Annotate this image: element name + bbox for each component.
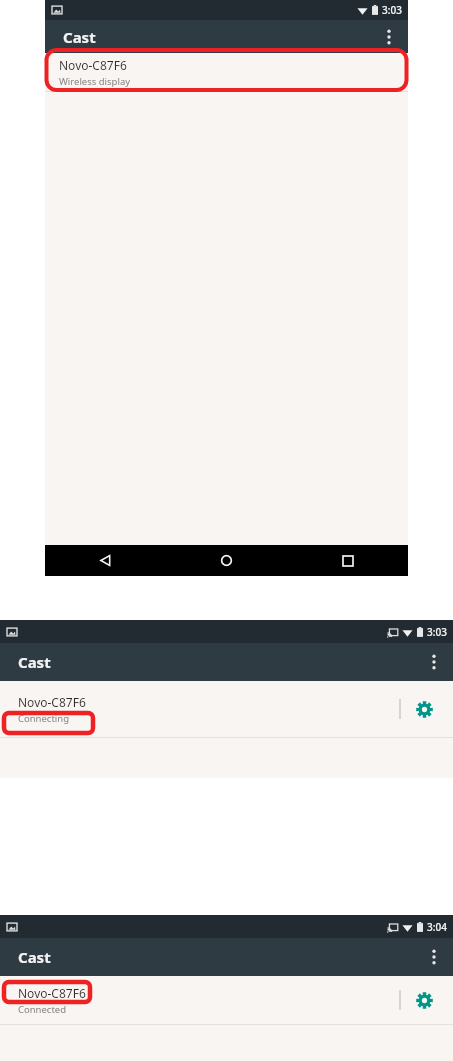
staticText: Novo-C87F6 (59, 57, 127, 73)
button[interactable]: Device settings (411, 987, 437, 1013)
staticText: 3:03 (382, 3, 402, 17)
button[interactable]: More options (421, 649, 447, 675)
staticText: 3:04 (427, 920, 447, 934)
staticText: Connected (18, 1003, 67, 1016)
staticText: Cast (18, 947, 51, 967)
staticText: Connecting (18, 712, 70, 725)
staticText: Cast (18, 652, 51, 672)
button[interactable]: More options (376, 24, 402, 50)
button[interactable]: Novo-C87F6 (0, 976, 453, 1024)
staticText: Novo-C87F6 (18, 985, 86, 1001)
button[interactable]: Back (45, 545, 166, 576)
staticText: Cast (63, 27, 96, 47)
button[interactable]: Device settings (411, 696, 437, 722)
staticText: Novo-C87F6 (18, 694, 86, 710)
button[interactable]: More options (421, 944, 447, 970)
button[interactable]: Novo-C87F6 (0, 681, 453, 737)
button[interactable]: Home (166, 545, 287, 576)
button[interactable]: Recents (287, 545, 408, 576)
staticText: 3:03 (427, 625, 447, 639)
staticText: Wireless display (59, 75, 131, 88)
button[interactable]: Novo-C87F6 (45, 53, 408, 91)
